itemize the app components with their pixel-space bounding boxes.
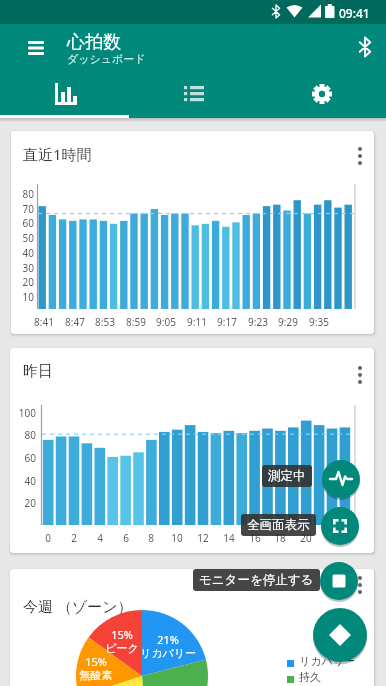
button[interactable]: 全画面表示 — [247, 517, 310, 533]
button[interactable] — [129, 72, 258, 115]
staticText: 8:47 — [62, 315, 88, 329]
button[interactable] — [313, 608, 367, 662]
staticText: 9:35 — [306, 315, 332, 329]
staticText: 2 — [64, 531, 84, 545]
staticText: 8:53 — [92, 315, 118, 329]
staticText: モニターを停止する — [199, 572, 314, 588]
staticText: 15% 無酸素 — [70, 654, 122, 682]
staticText: 6 — [116, 531, 136, 545]
button[interactable] — [321, 507, 359, 545]
button[interactable] — [322, 460, 360, 498]
staticText: 心拍数 — [67, 31, 121, 54]
staticText: 16 — [245, 531, 265, 545]
button[interactable]: モニターを停止する — [199, 572, 314, 588]
staticText: 80 — [12, 428, 36, 442]
staticText: 50 — [14, 231, 34, 245]
staticText: 持久 — [299, 670, 321, 684]
staticText: 40 — [14, 246, 34, 260]
button[interactable] — [352, 144, 368, 170]
staticText: 20 — [296, 531, 316, 545]
staticText: 18 — [270, 531, 290, 545]
staticText: 10 — [167, 531, 187, 545]
staticText: 直近1時間 — [23, 144, 92, 164]
button[interactable] — [257, 72, 386, 115]
staticText: 20 — [12, 496, 36, 510]
staticText: ダッシュボード — [67, 52, 146, 66]
staticText: 60 — [12, 451, 36, 465]
staticText: 20 — [14, 275, 34, 289]
staticText: 40 — [12, 474, 36, 488]
staticText: 9:23 — [245, 315, 271, 329]
staticText: 昨日 — [23, 362, 53, 381]
staticText: 60 — [14, 216, 34, 230]
staticText: 8 — [141, 531, 161, 545]
button[interactable] — [20, 38, 52, 60]
staticText: 9:11 — [184, 315, 210, 329]
button[interactable] — [352, 573, 368, 599]
button[interactable] — [320, 562, 358, 600]
staticText: 80 — [14, 187, 34, 201]
button[interactable] — [0, 72, 129, 115]
staticText: 9:29 — [275, 315, 301, 329]
staticText: 0 — [38, 531, 58, 545]
staticText: 8:59 — [123, 315, 149, 329]
staticText: 9:17 — [214, 315, 240, 329]
staticText: 70 — [14, 202, 34, 216]
staticText: 測定中 — [268, 468, 306, 484]
staticText: 10 — [14, 290, 34, 304]
staticText: 09:41 — [339, 5, 370, 21]
staticText: 12 — [193, 531, 213, 545]
button[interactable] — [352, 363, 368, 389]
staticText: リカバリー — [299, 654, 356, 668]
staticText: 30 — [14, 261, 34, 275]
button[interactable]: 測定中 — [268, 468, 306, 484]
staticText: 8:41 — [31, 315, 57, 329]
staticText: 14 — [219, 531, 239, 545]
staticText: 9:05 — [153, 315, 179, 329]
staticText: 4 — [90, 531, 110, 545]
staticText: 100 — [12, 406, 36, 420]
staticText: 15% ピーク — [96, 627, 148, 655]
staticText: 21% リカバリー — [131, 632, 205, 660]
staticText: 全画面表示 — [247, 517, 310, 533]
staticText: 今週 （ゾーン） — [23, 596, 133, 616]
button[interactable] — [352, 34, 378, 60]
